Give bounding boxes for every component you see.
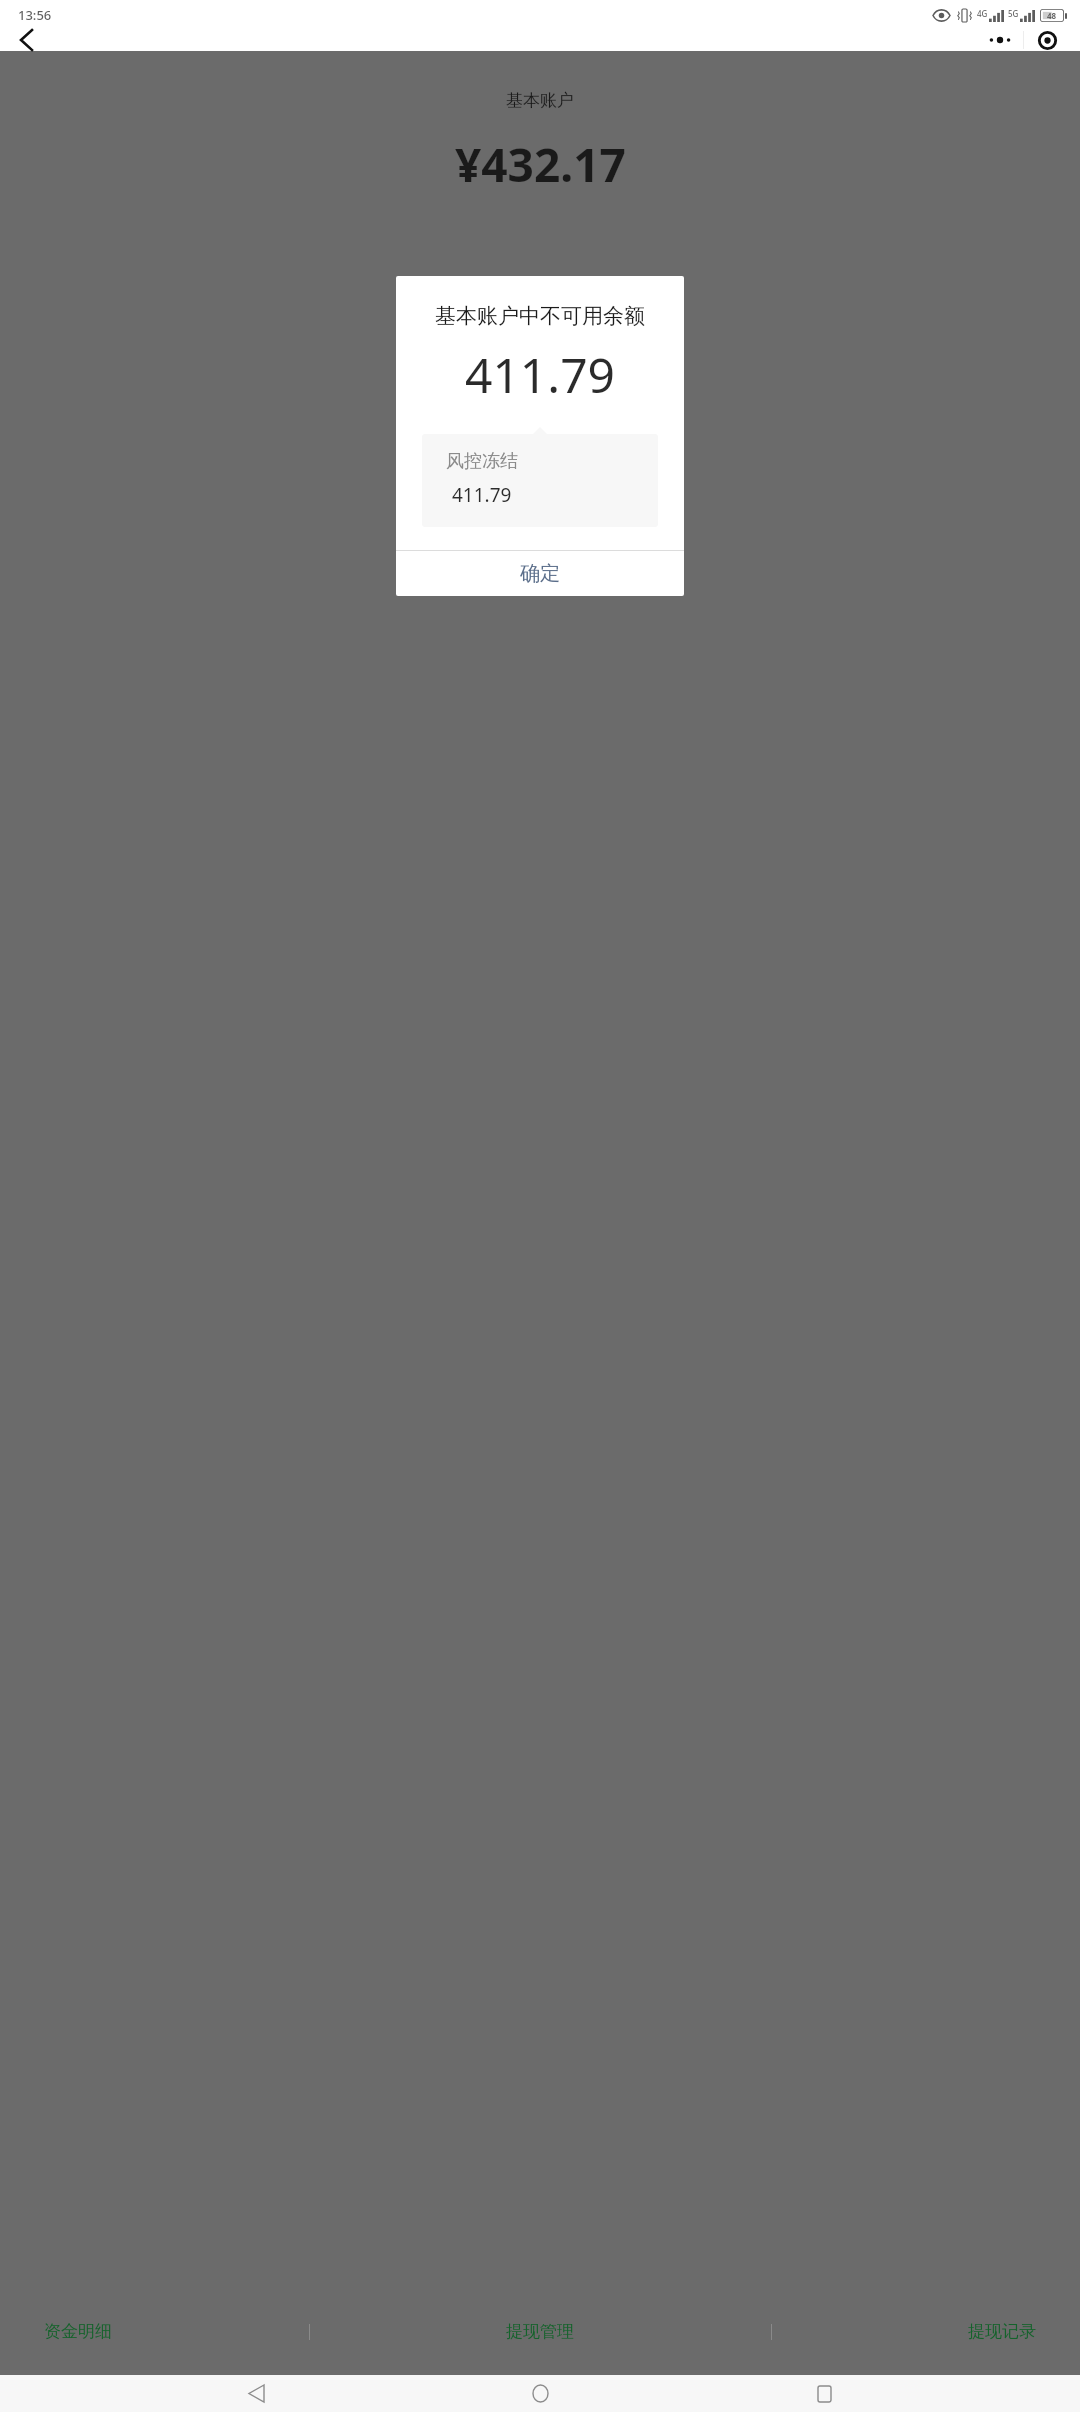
staticText: 13:56 <box>18 6 52 24</box>
staticText: 411.79 <box>396 342 684 407</box>
staticText: 资金明细 <box>44 2321 112 2342</box>
staticText: 确定 <box>520 561 560 586</box>
staticText: 5G <box>1008 8 1019 19</box>
button[interactable]: Back <box>4 29 48 51</box>
button[interactable]: More <box>977 29 1023 51</box>
button[interactable]: 提现管理 <box>496 2315 584 2348</box>
staticText: 48 <box>1047 10 1057 21</box>
button[interactable]: Close mini program <box>1024 29 1070 51</box>
button[interactable]: 提现记录 <box>958 2315 1046 2348</box>
staticText: 基本账户 <box>506 90 574 111</box>
button[interactable]: 资金明细 <box>34 2315 122 2348</box>
staticText: 风控冻结 <box>446 450 518 473</box>
staticText: ¥432.17 <box>455 133 626 196</box>
staticText: 提现记录 <box>968 2321 1036 2342</box>
staticText: 基本账户中不可用余额 <box>396 303 684 329</box>
button[interactable]: Home <box>512 2375 568 2412</box>
button[interactable]: 确定 <box>396 551 684 596</box>
button[interactable]: Recents <box>796 2375 852 2412</box>
staticText: 提现管理 <box>506 2321 574 2342</box>
staticText: 4G <box>977 8 988 19</box>
button[interactable]: Back <box>228 2375 284 2412</box>
staticText: 411.79 <box>452 482 512 508</box>
